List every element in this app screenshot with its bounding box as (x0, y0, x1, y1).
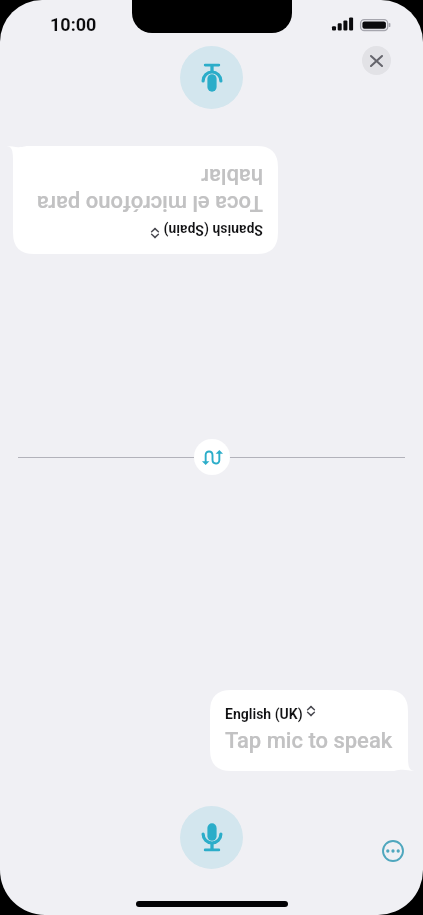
button[interactable]: Microphone (180, 806, 243, 869)
button[interactable]: Swap languages (194, 439, 230, 475)
button[interactable]: Spanish (Spain) (13, 146, 278, 254)
staticText: Tap mic to speak (225, 728, 393, 754)
staticText: Spanish (Spain) (163, 222, 263, 238)
button[interactable]: English (UK) (210, 690, 408, 771)
staticText: Toca el micrófono para hablar (28, 163, 263, 216)
staticText: English (UK) (225, 706, 303, 722)
button[interactable]: Close (362, 46, 391, 75)
staticText: 10:00 (50, 14, 97, 35)
button[interactable]: Microphone (180, 46, 243, 109)
button[interactable]: More options (378, 836, 407, 865)
